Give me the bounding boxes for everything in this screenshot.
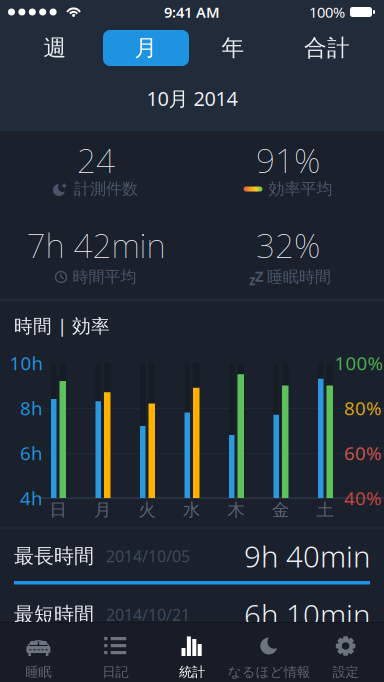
button[interactable]: 月	[103, 30, 189, 66]
staticText: 最短時間	[14, 602, 94, 627]
staticText: 土	[316, 499, 333, 521]
button[interactable]: 合計	[287, 30, 367, 66]
staticText: 9h 40min	[244, 536, 370, 575]
staticText: 週	[43, 34, 66, 62]
button[interactable]: なるほど情報	[230, 622, 307, 682]
staticText: 合計	[304, 34, 350, 62]
staticText: 統計	[179, 664, 205, 680]
staticText: 91%	[256, 138, 320, 182]
button[interactable]: 日記	[77, 622, 154, 682]
staticText: 24	[77, 138, 115, 182]
staticText: 100%	[334, 351, 383, 375]
staticText: 100%	[309, 2, 345, 22]
staticText: 6h	[20, 441, 43, 465]
staticText: 時間平均	[72, 267, 136, 287]
staticText: 年	[221, 34, 244, 62]
staticText: 設定	[333, 664, 359, 680]
button[interactable]: 年	[193, 30, 273, 66]
staticText: 時間 | 効率	[14, 313, 110, 338]
staticText: 6h 10min	[244, 595, 370, 634]
staticText: 月	[94, 499, 111, 521]
staticText: Z	[255, 266, 263, 286]
button[interactable]: 睡眠	[0, 622, 77, 682]
staticText: 9:41 AM	[164, 2, 220, 22]
staticText: 睡眠時間	[267, 267, 331, 287]
staticText: 睡眠	[25, 664, 51, 680]
staticText: 40%	[344, 486, 382, 510]
staticText: なるほど情報	[228, 664, 310, 680]
staticText: 32%	[256, 223, 320, 267]
button[interactable]: 最長時間	[0, 531, 384, 584]
staticText: 最長時間	[14, 544, 94, 568]
button[interactable]: 設定	[307, 622, 384, 682]
staticText: z	[249, 271, 256, 289]
staticText: 2014/10/21	[106, 604, 190, 625]
button[interactable]: 統計	[154, 622, 230, 682]
staticText: 月	[134, 34, 157, 62]
staticText: 2014/10/05	[106, 545, 190, 567]
staticText: 計測件数	[74, 179, 138, 199]
staticText: 水	[183, 499, 200, 521]
staticText: 効率平均	[268, 179, 332, 199]
staticText: 4h	[20, 486, 43, 510]
staticText: 火	[138, 499, 155, 521]
staticText: 7h 42min	[26, 223, 165, 267]
staticText: 日記	[102, 664, 128, 680]
staticText: 金	[272, 499, 289, 521]
button[interactable]: 週	[15, 30, 95, 66]
staticText: 10月 2014	[146, 85, 237, 112]
staticText: 10h	[9, 351, 43, 375]
staticText: 8h	[20, 396, 43, 420]
staticText: 80%	[344, 396, 382, 420]
button[interactable]: 最短時間	[0, 584, 384, 639]
staticText: 木	[227, 499, 244, 521]
staticText: 日	[49, 499, 66, 521]
staticText: 60%	[344, 441, 382, 465]
